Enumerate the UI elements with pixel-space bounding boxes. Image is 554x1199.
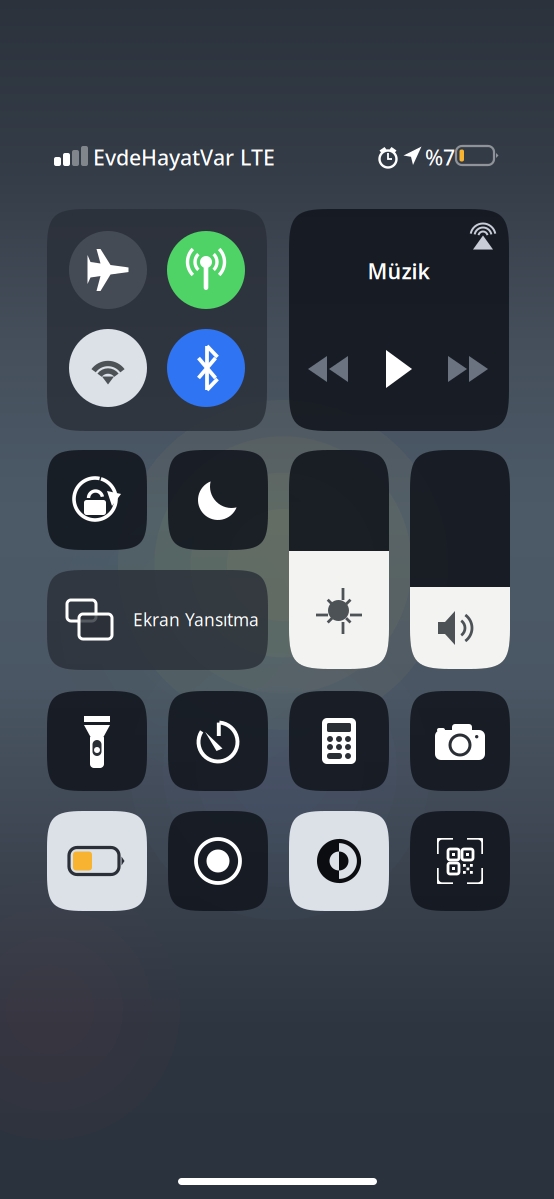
button[interactable]: Screen Recording <box>168 811 268 911</box>
button[interactable]: Next <box>446 355 490 383</box>
button[interactable]: Previous <box>306 355 350 383</box>
button[interactable]: Airplane Mode <box>69 231 147 309</box>
button[interactable]: Wi-Fi <box>69 329 147 407</box>
button[interactable]: AirPlay <box>470 223 496 250</box>
staticText: EvdeHayatVar LTE <box>93 143 275 171</box>
button[interactable]: Bluetooth <box>167 329 245 407</box>
button[interactable]: Rotation Lock <box>47 450 147 550</box>
button[interactable]: Code Scanner <box>410 811 510 911</box>
staticText: %7 <box>425 143 455 171</box>
button[interactable]: Volume <box>410 450 510 669</box>
button[interactable]: Timer <box>168 691 268 791</box>
button[interactable]: Play <box>384 350 414 388</box>
button[interactable]: Do Not Disturb <box>168 450 268 550</box>
button[interactable]: Ekran Yansıtma <box>47 570 268 670</box>
button[interactable]: Brightness <box>289 450 389 669</box>
staticText: Müzik <box>367 257 430 285</box>
button[interactable]: Flashlight <box>47 691 147 791</box>
staticText: Ekran Yansıtma <box>133 608 259 631</box>
button[interactable]: Cellular Data <box>167 231 245 309</box>
button[interactable]: Camera <box>410 691 510 791</box>
button[interactable]: Calculator <box>289 691 389 791</box>
button[interactable]: Low Power Mode <box>47 811 147 911</box>
button[interactable]: Dark Mode <box>289 811 389 911</box>
